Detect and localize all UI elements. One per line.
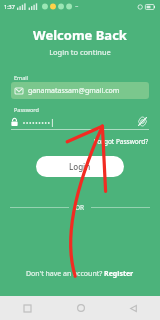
button[interactable]: Recent apps (0, 296, 54, 320)
button[interactable]: ganamatassam@gmail.com (11, 82, 149, 99)
staticText: ganamatassam@gmail.com (28, 86, 120, 96)
staticText: Login (69, 161, 91, 172)
staticText: 1:37 (4, 3, 15, 10)
staticText: OR (75, 203, 85, 212)
button[interactable]: Login (36, 156, 124, 177)
staticText: Password (14, 106, 39, 113)
button[interactable]: Forgot Password? (83, 135, 160, 148)
button[interactable]: Back (107, 296, 160, 320)
button[interactable]: Don't have an account? Register (22, 265, 138, 283)
staticText: Login to continue (0, 47, 160, 57)
staticText: Email (14, 74, 29, 81)
staticText: Welcome Back (0, 26, 160, 44)
button[interactable]: Show password (136, 115, 149, 128)
button[interactable]: Home (54, 296, 107, 320)
button[interactable]: Show password (11, 114, 149, 129)
